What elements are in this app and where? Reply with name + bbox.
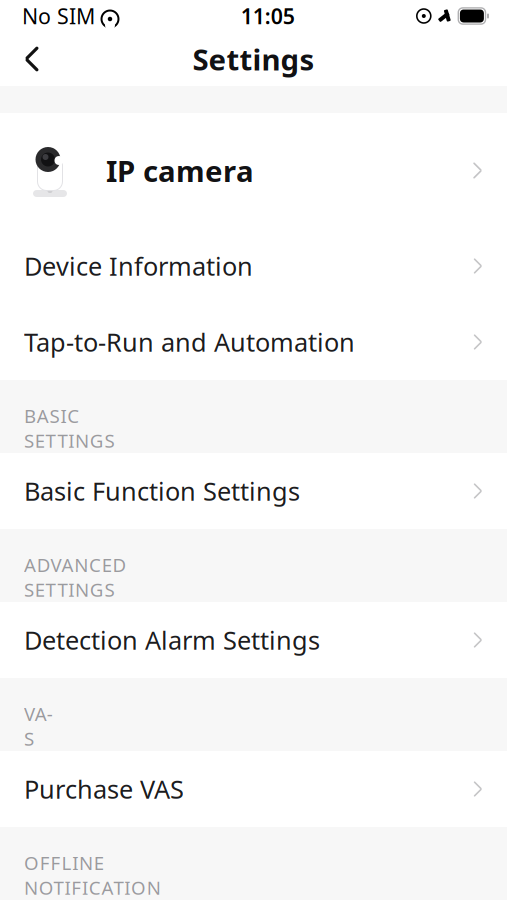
staticText: Detection Alarm Settings (24, 623, 320, 657)
staticText: 11:05 (241, 2, 295, 30)
button[interactable]: Purchase VAS (0, 751, 507, 827)
staticText: No SIM (22, 2, 95, 30)
button[interactable]: Tap-to-Run and Automation (0, 304, 507, 380)
staticText: Basic Function Settings (24, 474, 300, 508)
button[interactable]: Basic Function Settings (0, 453, 507, 529)
staticText: Purchase VAS (24, 772, 184, 806)
button[interactable]: Back (10, 37, 54, 81)
button[interactable]: Detection Alarm Settings (0, 602, 507, 678)
button[interactable]: Device Information (0, 228, 507, 304)
staticText: Device Information (24, 249, 253, 283)
staticText: ADVANCED SETTINGS (24, 552, 127, 602)
staticText: Tap-to-Run and Automation (24, 325, 355, 359)
staticText: OFFLINE NOTIFICATION (24, 850, 161, 900)
staticText: IP camera (106, 151, 254, 190)
staticText: VAS (24, 701, 53, 751)
button[interactable]: IP camera (0, 113, 507, 228)
staticText: BASIC SETTINGS (24, 403, 115, 453)
staticText: Settings (192, 39, 314, 78)
